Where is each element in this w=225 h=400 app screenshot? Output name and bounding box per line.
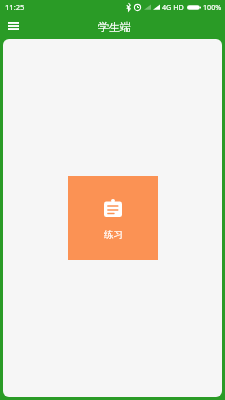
staticText: 11:25 (5, 2, 25, 12)
staticText: 4G HD (162, 2, 184, 12)
staticText: 练习 (104, 229, 123, 241)
button[interactable]: 练习 (68, 176, 158, 260)
button[interactable]: Open navigation menu (3, 15, 24, 36)
staticText: 学生端 (98, 20, 131, 34)
staticText: 100% (203, 2, 222, 12)
